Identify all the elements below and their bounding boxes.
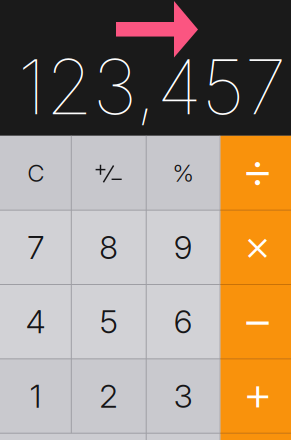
- staticText: 3: [174, 377, 193, 415]
- button[interactable]: C: [0, 136, 71, 210]
- button[interactable]: =: [220, 433, 291, 440]
- button[interactable]: +: [220, 359, 291, 433]
- button[interactable]: 8: [71, 210, 146, 284]
- button[interactable]: ÷: [220, 136, 291, 210]
- staticText: −: [241, 288, 274, 350]
- staticText: +: [243, 365, 273, 422]
- staticText: 8: [99, 228, 118, 267]
- button[interactable]: %: [146, 136, 220, 210]
- staticText: 9: [174, 228, 193, 267]
- staticText: ×: [243, 219, 271, 271]
- staticText: ÷: [241, 139, 274, 200]
- button[interactable]: 2: [71, 359, 146, 433]
- staticText: 1: [30, 377, 42, 415]
- staticText: %: [172, 158, 194, 187]
- staticText: 123,457: [18, 41, 287, 133]
- button[interactable]: 9: [146, 210, 220, 284]
- staticText: 4: [26, 302, 46, 341]
- staticText: C: [27, 158, 44, 187]
- button[interactable]: 6: [146, 284, 220, 359]
- button[interactable]: ×: [220, 210, 291, 284]
- button[interactable]: 0: [0, 433, 146, 440]
- button[interactable]: [71, 136, 146, 210]
- staticText: 6: [174, 302, 193, 341]
- button[interactable]: 3: [146, 359, 220, 433]
- button[interactable]: 5: [71, 284, 146, 359]
- button[interactable]: 7: [0, 210, 71, 284]
- staticText: 7: [27, 228, 44, 267]
- button[interactable]: −: [220, 284, 291, 359]
- button[interactable]: .: [146, 433, 220, 440]
- staticText: 2: [99, 377, 118, 415]
- button[interactable]: 4: [0, 284, 71, 359]
- staticText: 5: [100, 302, 118, 341]
- button[interactable]: 1: [0, 359, 71, 433]
